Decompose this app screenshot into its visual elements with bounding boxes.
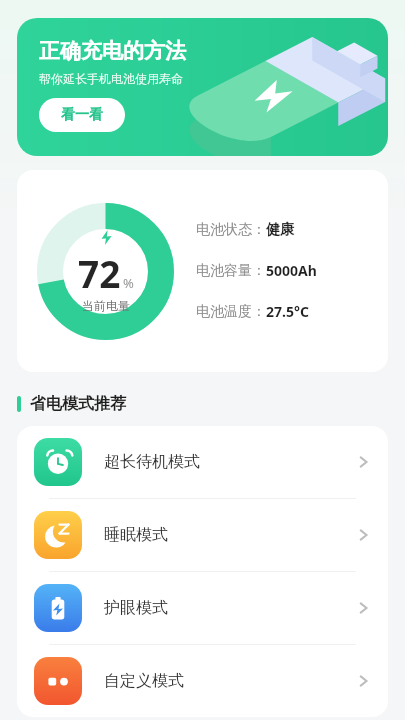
staticText: 27.5°C (266, 302, 309, 321)
other: 打开 超长待机模式 (355, 454, 371, 470)
button[interactable]: 正确充电的方法 (17, 18, 388, 156)
staticText: 看一看 (61, 106, 103, 124)
staticText: 健康 (266, 221, 294, 239)
staticText: % (123, 274, 134, 292)
staticText: 当前电量 (82, 298, 130, 313)
other: 打开 睡眠模式 (355, 527, 371, 543)
staticText: 超长待机模式 (104, 452, 355, 472)
staticText: 电池温度： (196, 303, 266, 321)
button[interactable]: 睡眠模式 (17, 499, 388, 571)
staticText: 正确充电的方法 (39, 38, 186, 64)
button[interactable]: 护眼模式 (17, 572, 388, 644)
staticText: 72 (78, 248, 121, 298)
staticText: 5000Ah (266, 261, 317, 280)
staticText: 帮你延长手机电池使用寿命 (39, 71, 183, 86)
staticText: 电池状态： (196, 221, 266, 239)
staticText: 护眼模式 (104, 598, 355, 618)
button[interactable]: 自定义模式 (17, 645, 388, 717)
other: 打开 自定义模式 (355, 673, 371, 689)
button[interactable]: 看一看 (39, 98, 125, 132)
staticText: 自定义模式 (104, 671, 355, 691)
staticText: 电池容量： (196, 262, 266, 280)
other: 打开 护眼模式 (355, 600, 371, 616)
button[interactable]: 超长待机模式 (17, 426, 388, 498)
staticText: 省电模式推荐 (30, 394, 126, 414)
staticText: 睡眠模式 (104, 525, 355, 545)
